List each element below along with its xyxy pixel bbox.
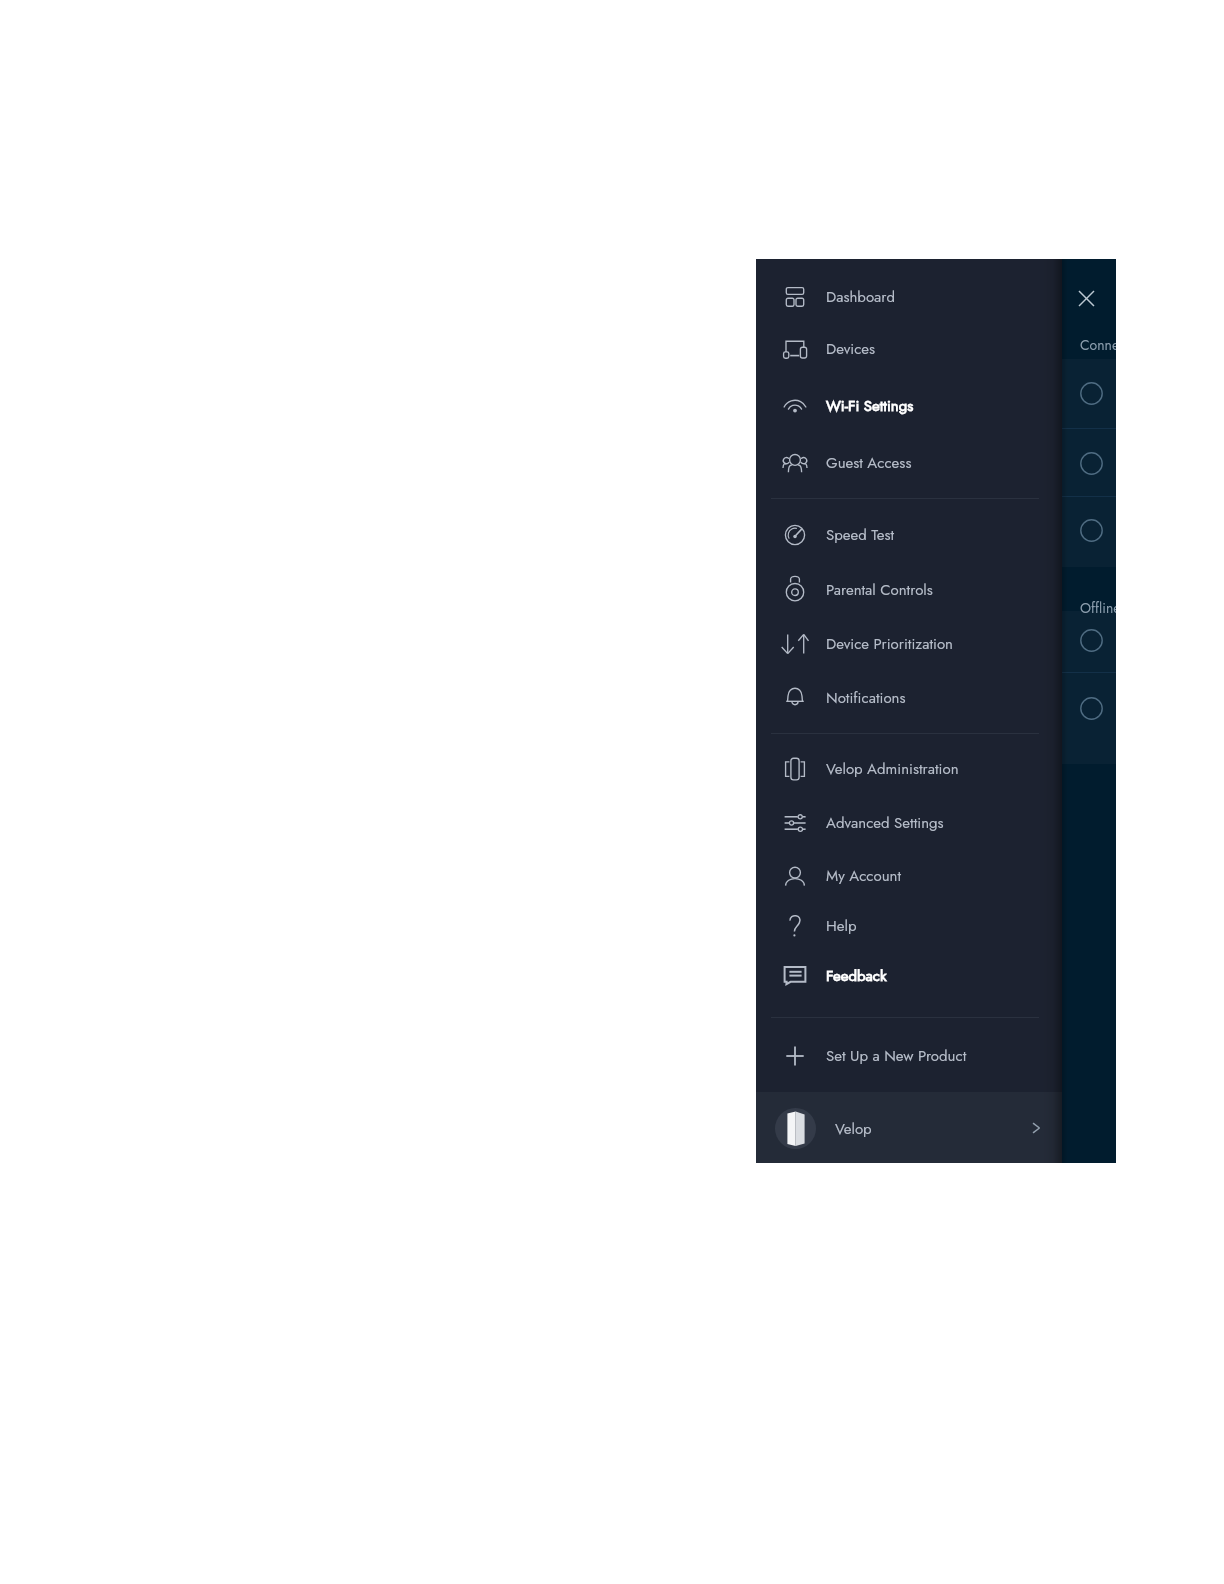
staticText: Set Up a New Product (826, 1045, 967, 1067)
button[interactable]: Help (756, 902, 1062, 950)
staticText: Velop Administration (826, 758, 959, 780)
button[interactable]: Parental Controls (756, 566, 1062, 614)
staticText: Wi-Fi Settings (826, 395, 914, 417)
staticText: Device Prioritization (826, 633, 953, 655)
staticText: Connected (1080, 335, 1116, 355)
button[interactable]: Device (1080, 519, 1103, 542)
button[interactable]: Set Up a New Product (756, 1032, 1062, 1080)
button[interactable]: Device (1080, 382, 1103, 405)
button[interactable]: Devices (756, 325, 1062, 373)
button[interactable]: Close (1072, 284, 1101, 313)
staticText: Speed Test (826, 524, 895, 546)
staticText: Offline (1080, 598, 1116, 618)
button[interactable]: Velop (756, 1092, 1062, 1163)
button[interactable]: Advanced Settings (756, 799, 1062, 847)
button[interactable]: Device (1080, 697, 1103, 720)
staticText: Velop (835, 1118, 872, 1140)
staticText: Advanced Settings (826, 812, 944, 834)
staticText: Devices (826, 338, 876, 360)
button[interactable]: Speed Test (756, 511, 1062, 559)
staticText: Guest Access (826, 452, 912, 474)
staticText: Feedback (826, 965, 887, 987)
button[interactable]: Device (1080, 629, 1103, 652)
button[interactable]: Dashboard (756, 273, 1062, 321)
button[interactable]: Device Prioritization (756, 620, 1062, 668)
button[interactable]: Notifications (756, 674, 1062, 722)
button[interactable]: Velop Administration (756, 745, 1062, 793)
button[interactable]: Guest Access (756, 439, 1062, 487)
button[interactable]: Feedback (756, 952, 1062, 1000)
staticText: Parental Controls (826, 579, 933, 601)
button[interactable]: Device (1080, 452, 1103, 475)
staticText: Notifications (826, 687, 906, 709)
staticText: Dashboard (826, 286, 895, 308)
button[interactable]: My Account (756, 852, 1062, 900)
button[interactable]: Wi-Fi Settings (756, 382, 1062, 430)
staticText: Help (826, 915, 857, 937)
staticText: My Account (826, 865, 902, 887)
